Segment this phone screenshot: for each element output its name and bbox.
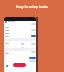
button[interactable]: Add task [13, 63, 26, 67]
staticText: Easy to setup tasks [16, 4, 48, 9]
button[interactable]: Tag [31, 23, 36, 25]
button[interactable]: Action [29, 57, 36, 59]
button[interactable]: Open [31, 35, 36, 37]
